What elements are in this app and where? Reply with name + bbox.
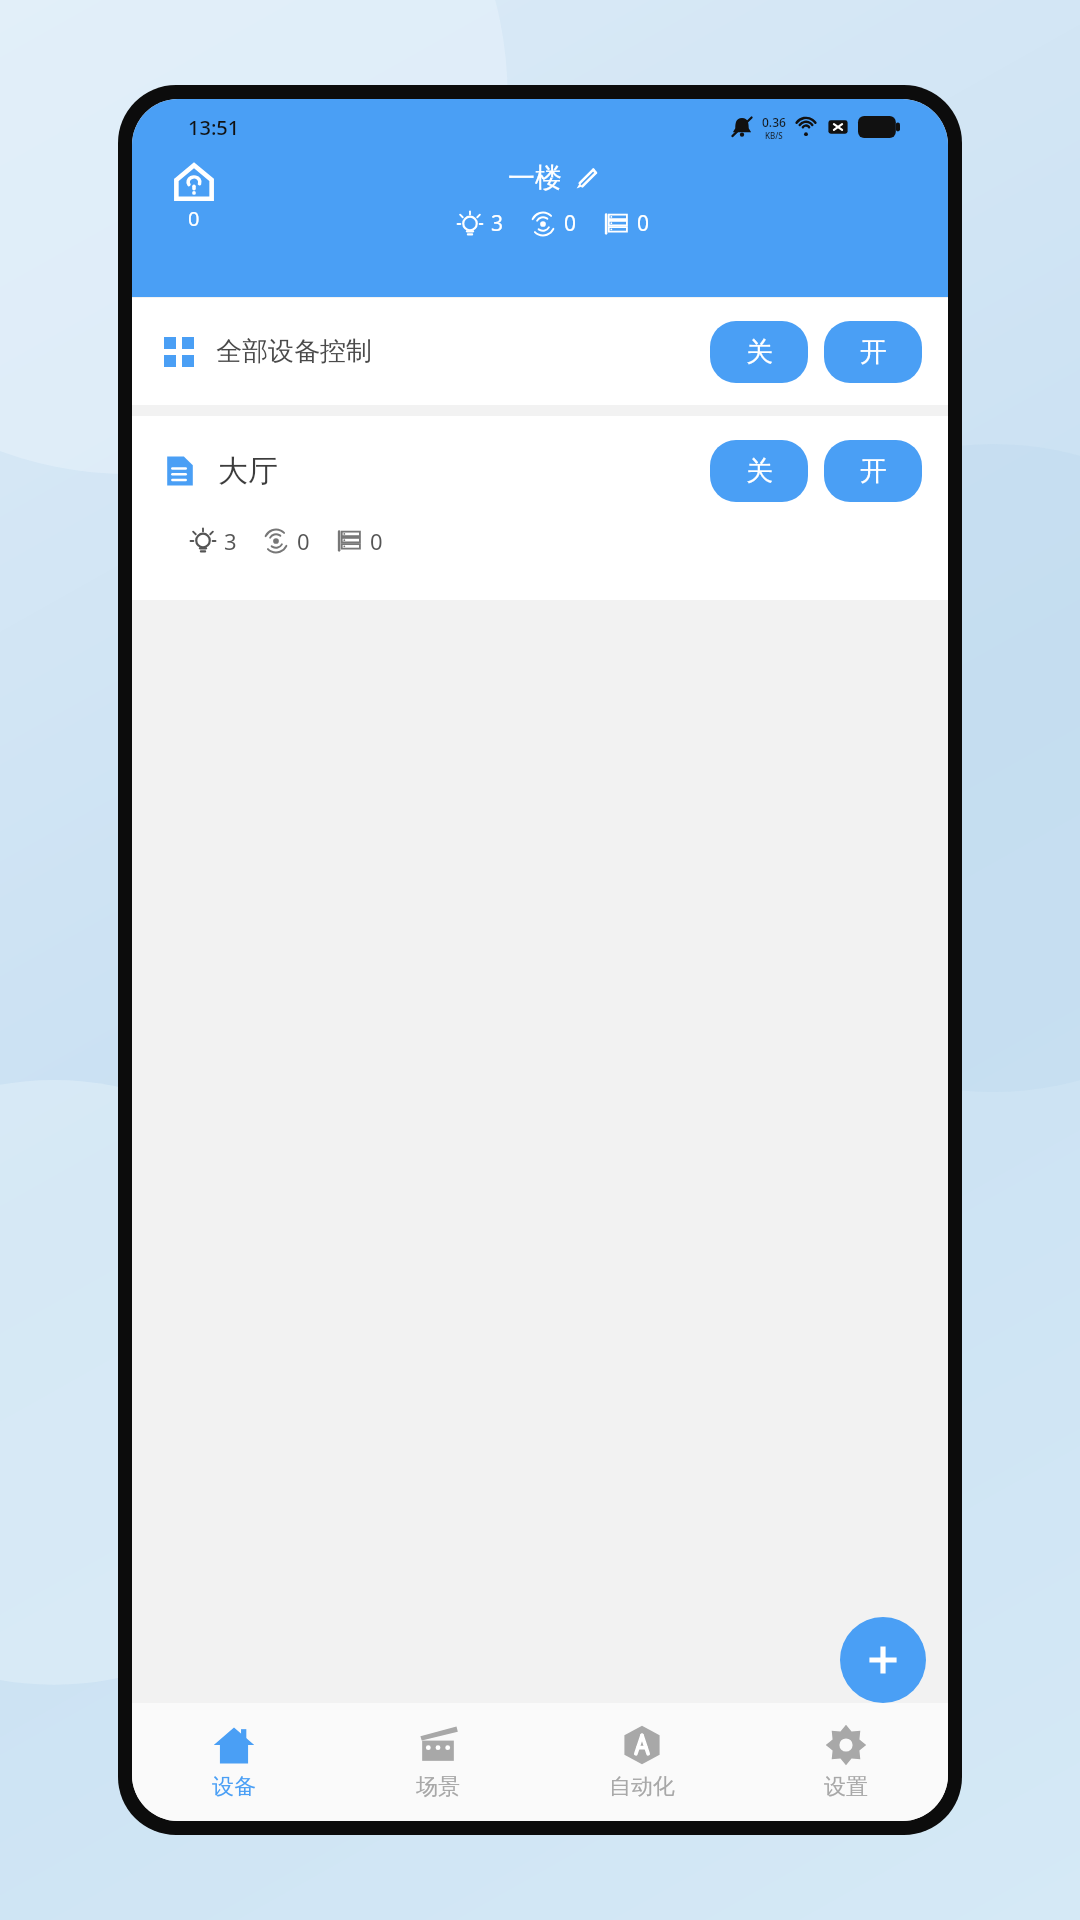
staticText: 0 (564, 209, 577, 238)
button[interactable]: Home (160, 161, 228, 232)
staticText: 0 (297, 526, 310, 556)
button[interactable]: 关 (710, 321, 808, 383)
staticText: 0 (370, 526, 383, 556)
staticText: 关 (746, 454, 773, 488)
staticText: 设置 (824, 1773, 868, 1801)
staticText: 0 (637, 209, 650, 238)
staticText: 自动化 (609, 1773, 675, 1801)
button[interactable]: 大厅 (132, 416, 948, 600)
staticText: 开 (860, 335, 887, 369)
staticText: 场景 (416, 1773, 460, 1801)
staticText: 大厅 (218, 452, 278, 490)
staticText: 关 (746, 335, 773, 369)
button[interactable]: 开 (824, 321, 922, 383)
button[interactable]: Edit (572, 164, 600, 192)
button[interactable]: Add (840, 1617, 926, 1703)
staticText: 一楼 (508, 161, 562, 195)
staticText: 0.36 (762, 114, 786, 130)
button[interactable]: 关 (710, 440, 808, 502)
staticText: 3 (491, 209, 504, 238)
staticText: 13:51 (188, 114, 240, 141)
button[interactable]: 开 (824, 440, 922, 502)
button[interactable]: 场景 (336, 1703, 540, 1821)
staticText: KB/S (765, 130, 783, 141)
staticText: 全部设备控制 (216, 335, 372, 368)
button[interactable]: 自动化 (540, 1703, 744, 1821)
staticText: 设备 (212, 1773, 256, 1801)
button[interactable]: 设备 (132, 1703, 336, 1821)
staticText: 开 (860, 454, 887, 488)
button[interactable]: 全部设备控制 (132, 298, 948, 405)
staticText: 0 (188, 205, 200, 232)
staticText: 3 (224, 526, 237, 556)
button[interactable]: 设置 (744, 1703, 948, 1821)
